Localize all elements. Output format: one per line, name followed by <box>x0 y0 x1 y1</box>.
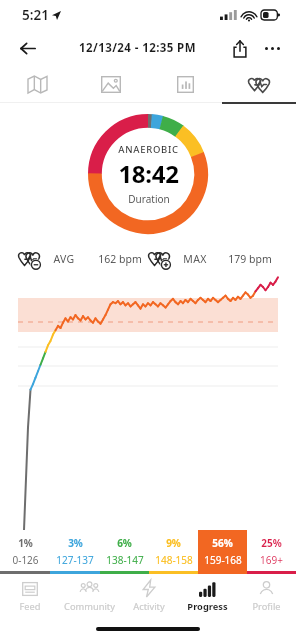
staticText: Community <box>64 600 115 613</box>
button[interactable]: Profile <box>237 574 296 618</box>
staticText: Profile <box>252 600 281 613</box>
staticText: 169+ <box>260 553 283 567</box>
button[interactable]: 6% <box>100 530 149 574</box>
staticText: 25% <box>261 536 282 550</box>
staticText: 1% <box>18 536 33 550</box>
staticText: 0-126 <box>12 553 39 567</box>
button[interactable]: Progress <box>178 574 237 618</box>
staticText: 179 bpm <box>228 252 272 266</box>
staticText: Activity <box>133 600 165 613</box>
staticText: 127-137 <box>56 553 94 567</box>
button[interactable]: Back <box>10 31 44 65</box>
staticText: ANAEROBIC <box>118 143 179 156</box>
button[interactable]: Photos <box>74 66 148 102</box>
button[interactable]: 9% <box>149 530 198 574</box>
staticText: 5:21 <box>22 6 49 24</box>
button[interactable]: Activity <box>119 574 178 618</box>
staticText: Feed <box>19 600 41 613</box>
button[interactable]: 25% <box>247 530 296 574</box>
button[interactable]: Heart rate <box>222 66 296 102</box>
staticText: Duration <box>128 192 170 206</box>
button[interactable]: 1% <box>0 530 50 574</box>
staticText: MAX <box>183 252 207 266</box>
staticText: 18:42 <box>118 157 179 190</box>
button[interactable]: 3% <box>50 530 100 574</box>
staticText: AVG <box>53 252 75 266</box>
staticText: Progress <box>187 600 228 613</box>
button[interactable]: Feed <box>0 574 60 618</box>
button[interactable]: Share <box>224 32 256 64</box>
staticText: 138-147 <box>106 553 144 567</box>
button[interactable]: Splits <box>148 66 222 102</box>
button[interactable]: More options <box>256 32 288 64</box>
staticText: 6% <box>117 536 132 550</box>
staticText: 159-168 <box>204 553 242 567</box>
staticText: 56% <box>212 536 233 550</box>
button[interactable]: Map <box>0 66 74 102</box>
staticText: 9% <box>166 536 181 550</box>
staticText: 148-158 <box>155 553 193 567</box>
button[interactable]: Community <box>60 574 119 618</box>
button[interactable]: 56% <box>198 530 247 574</box>
staticText: 12/13/24 - 12:35 PM <box>79 40 196 56</box>
staticText: 162 bpm <box>98 252 142 266</box>
staticText: 3% <box>68 536 83 550</box>
